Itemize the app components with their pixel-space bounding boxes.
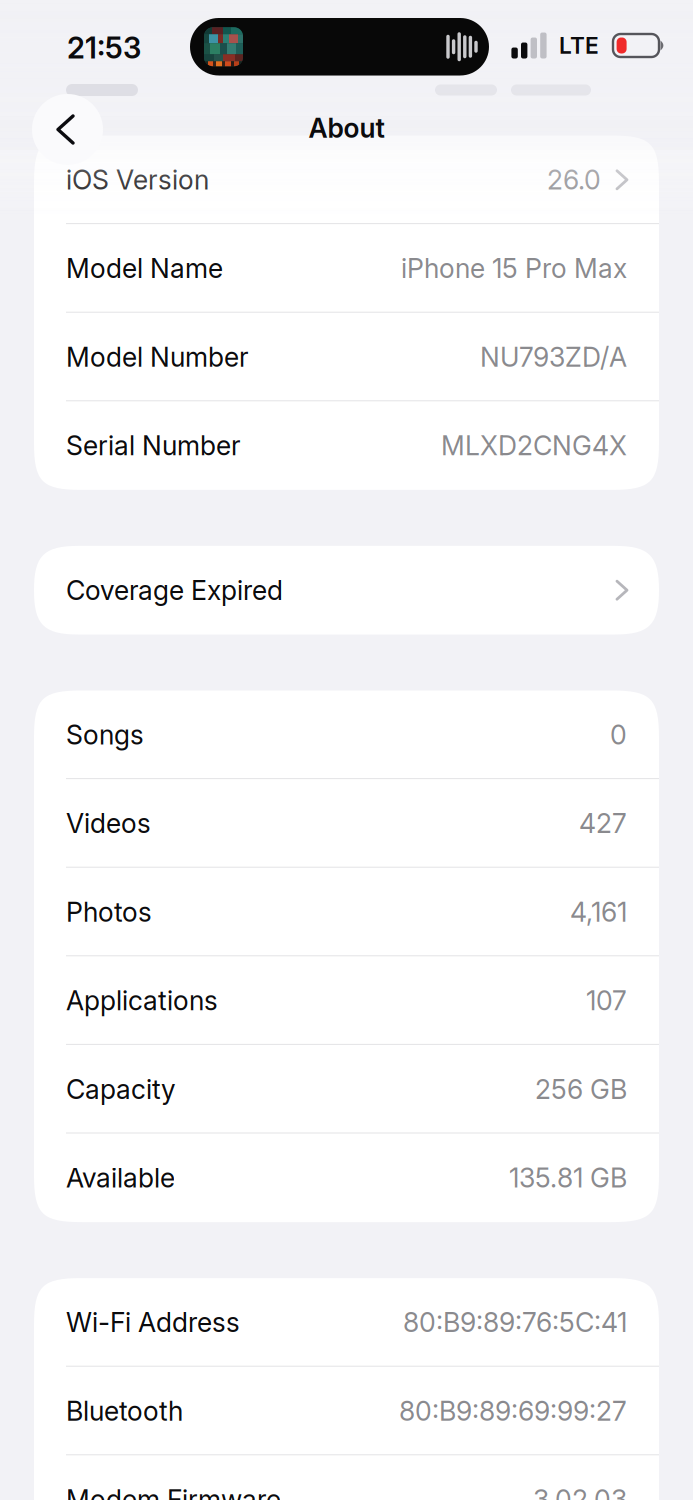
staticText: 135.81 GB [509, 1162, 627, 1194]
staticText: Bluetooth [66, 1395, 183, 1427]
button[interactable]: Coverage Expired [34, 546, 659, 634]
button[interactable]: Model Number [34, 313, 659, 401]
button[interactable]: Serial Number [34, 401, 659, 490]
button[interactable]: Wi-Fi Address [34, 1278, 659, 1367]
staticText: Coverage Expired [66, 574, 283, 606]
button[interactable]: Songs [34, 690, 659, 779]
staticText: About [308, 112, 384, 144]
button[interactable]: Bluetooth [34, 1367, 659, 1455]
staticText: 21:53 [67, 30, 141, 65]
button[interactable]: Applications [34, 956, 659, 1045]
staticText: Model Name [66, 252, 223, 285]
staticText: 26.0 [547, 164, 601, 196]
staticText: Serial Number [66, 429, 241, 462]
staticText: MLXD2CNG4X [441, 429, 627, 462]
staticText: Available [66, 1162, 175, 1194]
staticText: Wi-Fi Address [66, 1306, 240, 1339]
staticText: 427 [579, 807, 627, 840]
button[interactable]: Model Name [34, 224, 659, 313]
staticText: Videos [66, 807, 151, 840]
button[interactable]: Available [34, 1133, 659, 1222]
staticText: 256 GB [535, 1073, 627, 1105]
button[interactable]: Back [32, 94, 103, 165]
button[interactable]: Photos [34, 868, 659, 956]
button[interactable]: iOS Version [34, 135, 659, 224]
staticText: 4,161 [570, 896, 627, 928]
staticText: iPhone 15 Pro Max [401, 252, 627, 285]
staticText: NU793ZD/A [480, 341, 627, 373]
button[interactable]: Videos [34, 779, 659, 868]
staticText: Photos [66, 896, 152, 928]
staticText: 3.02.03 [533, 1483, 627, 1500]
staticText: 0 [610, 719, 627, 751]
staticText: Modem Firmware [66, 1483, 281, 1500]
staticText: LTE [559, 32, 599, 59]
staticText: 107 [586, 984, 627, 1017]
staticText: Capacity [66, 1073, 176, 1105]
staticText: Model Number [66, 341, 249, 373]
staticText: iOS Version [66, 164, 209, 196]
button[interactable]: Capacity [34, 1045, 659, 1133]
staticText: Songs [66, 719, 144, 751]
staticText: 80:B9:89:76:5C:41 [403, 1306, 627, 1339]
button[interactable]: Modem Firmware [34, 1455, 659, 1500]
staticText: 80:B9:89:69:99:27 [399, 1395, 627, 1427]
staticText: Applications [66, 984, 218, 1017]
